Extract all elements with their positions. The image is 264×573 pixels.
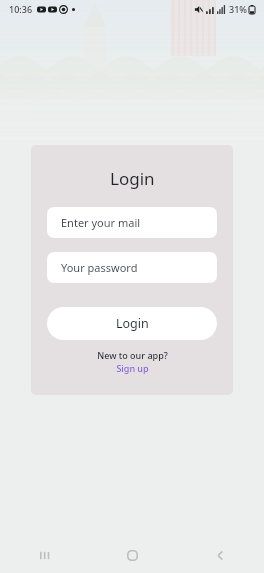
staticText: 10:36 [9,3,33,15]
button[interactable]: Login [47,307,217,340]
staticText: Login [116,315,149,332]
staticText: Your password [61,260,138,275]
button[interactable]: Enter your mail [47,207,217,238]
staticText: 31% [229,3,247,15]
button[interactable]: Recent apps [0,537,88,573]
button[interactable]: Your password [47,252,217,283]
button[interactable]: Home [88,537,176,573]
button[interactable]: Back [176,537,264,573]
staticText: Enter your mail [61,215,141,230]
staticText: Login [110,167,155,190]
staticText: New to our app? [97,349,168,361]
button[interactable]: Sign up [116,362,149,374]
staticText: Sign up [116,362,149,374]
